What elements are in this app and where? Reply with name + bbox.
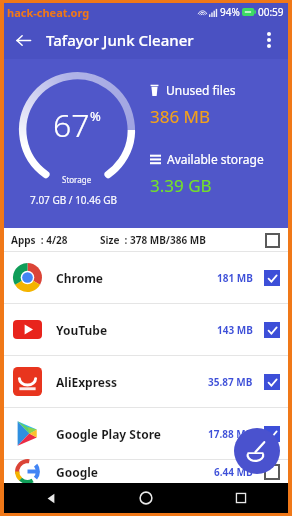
button[interactable]: Selected: [264, 426, 280, 442]
button[interactable]: Google: [4, 460, 288, 483]
staticText: 386 MB: [150, 105, 211, 128]
staticText: AliExpress: [56, 374, 118, 390]
staticText: Storage: [62, 174, 92, 185]
button[interactable]: YouTube: [4, 304, 288, 355]
button[interactable]: Selected: [264, 322, 280, 338]
staticText: 181 MB: [217, 271, 253, 285]
staticText: Apps : 4/28: [11, 233, 68, 247]
staticText: Unused files: [166, 82, 236, 98]
staticText: 143 MB: [217, 323, 253, 337]
button[interactable]: Back: [4, 483, 98, 513]
staticText: Available storage: [167, 151, 264, 167]
staticText: 00:59: [258, 5, 284, 19]
staticText: hack-cheat.org: [7, 5, 90, 20]
button[interactable]: Home: [98, 483, 193, 513]
button[interactable]: Select all: [265, 233, 280, 248]
button[interactable]: Back: [4, 21, 42, 59]
button[interactable]: Selected: [264, 374, 280, 390]
staticText: 35.87 MB: [208, 375, 253, 389]
staticText: Size : 378 MB/386 MB: [100, 233, 206, 247]
staticText: YouTube: [56, 322, 108, 338]
button[interactable]: More options: [250, 21, 288, 59]
staticText: 94%: [220, 5, 240, 19]
button[interactable]: Clean: [234, 428, 280, 474]
button[interactable]: Recent apps: [193, 483, 288, 513]
staticText: 67: [53, 103, 90, 147]
staticText: 6.44 MB: [214, 465, 253, 479]
button[interactable]: Google Play Store: [4, 408, 288, 459]
button[interactable]: Not selected: [264, 464, 280, 480]
button[interactable]: Selected: [264, 270, 280, 286]
staticText: 3.39 GB: [150, 174, 212, 197]
staticText: 17.88 MB: [208, 427, 253, 441]
staticText: Google Play Store: [56, 426, 161, 442]
staticText: 7.07 GB / 10.46 GB: [30, 193, 118, 207]
staticText: Google: [56, 464, 99, 480]
button[interactable]: Chrome: [4, 252, 288, 303]
staticText: %: [90, 107, 101, 125]
staticText: Chrome: [56, 270, 103, 286]
staticText: Tafayor Junk Cleaner: [46, 30, 194, 50]
button[interactable]: AliExpress: [4, 356, 288, 407]
